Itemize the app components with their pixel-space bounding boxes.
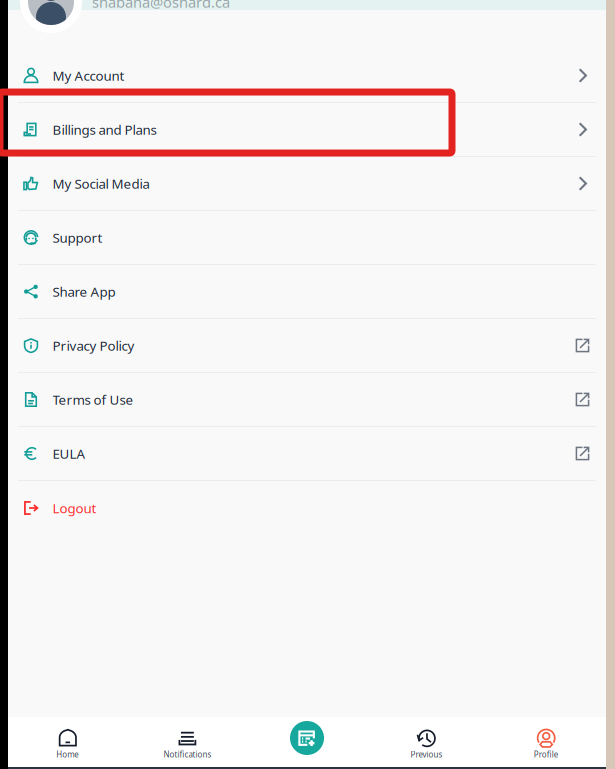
staticText: My Account <box>52 67 124 84</box>
staticText: Home <box>56 749 79 760</box>
staticText: Support <box>52 229 102 246</box>
button[interactable]: Billings and Plans <box>8 103 606 157</box>
button[interactable]: New booking <box>247 717 367 767</box>
button[interactable]: Profile <box>486 717 606 767</box>
staticText: Privacy Policy <box>52 337 134 354</box>
button[interactable]: Logout <box>8 481 606 535</box>
staticText: Terms of Use <box>52 391 133 408</box>
button[interactable]: Home <box>8 717 128 767</box>
staticText: shabana@oshard.ca <box>92 0 230 12</box>
staticText: Previous <box>411 749 443 760</box>
button[interactable]: Share App <box>8 265 606 319</box>
button[interactable]: Previous <box>367 717 486 767</box>
staticText: Logout <box>52 499 96 517</box>
button[interactable]: Support <box>8 211 606 265</box>
button[interactable]: My Account <box>8 49 606 103</box>
staticText: EULA <box>52 445 85 462</box>
staticText: My Social Media <box>52 175 149 192</box>
staticText: Share App <box>52 283 115 300</box>
button[interactable]: Terms of Use <box>8 373 606 427</box>
button[interactable]: Privacy Policy <box>8 319 606 373</box>
button[interactable]: My Social Media <box>8 157 606 211</box>
staticText: Billings and Plans <box>52 121 156 138</box>
button[interactable]: EULA <box>8 427 606 481</box>
staticText: Notifications <box>163 749 211 760</box>
staticText: Profile <box>534 749 559 760</box>
button[interactable]: Notifications <box>128 717 247 767</box>
